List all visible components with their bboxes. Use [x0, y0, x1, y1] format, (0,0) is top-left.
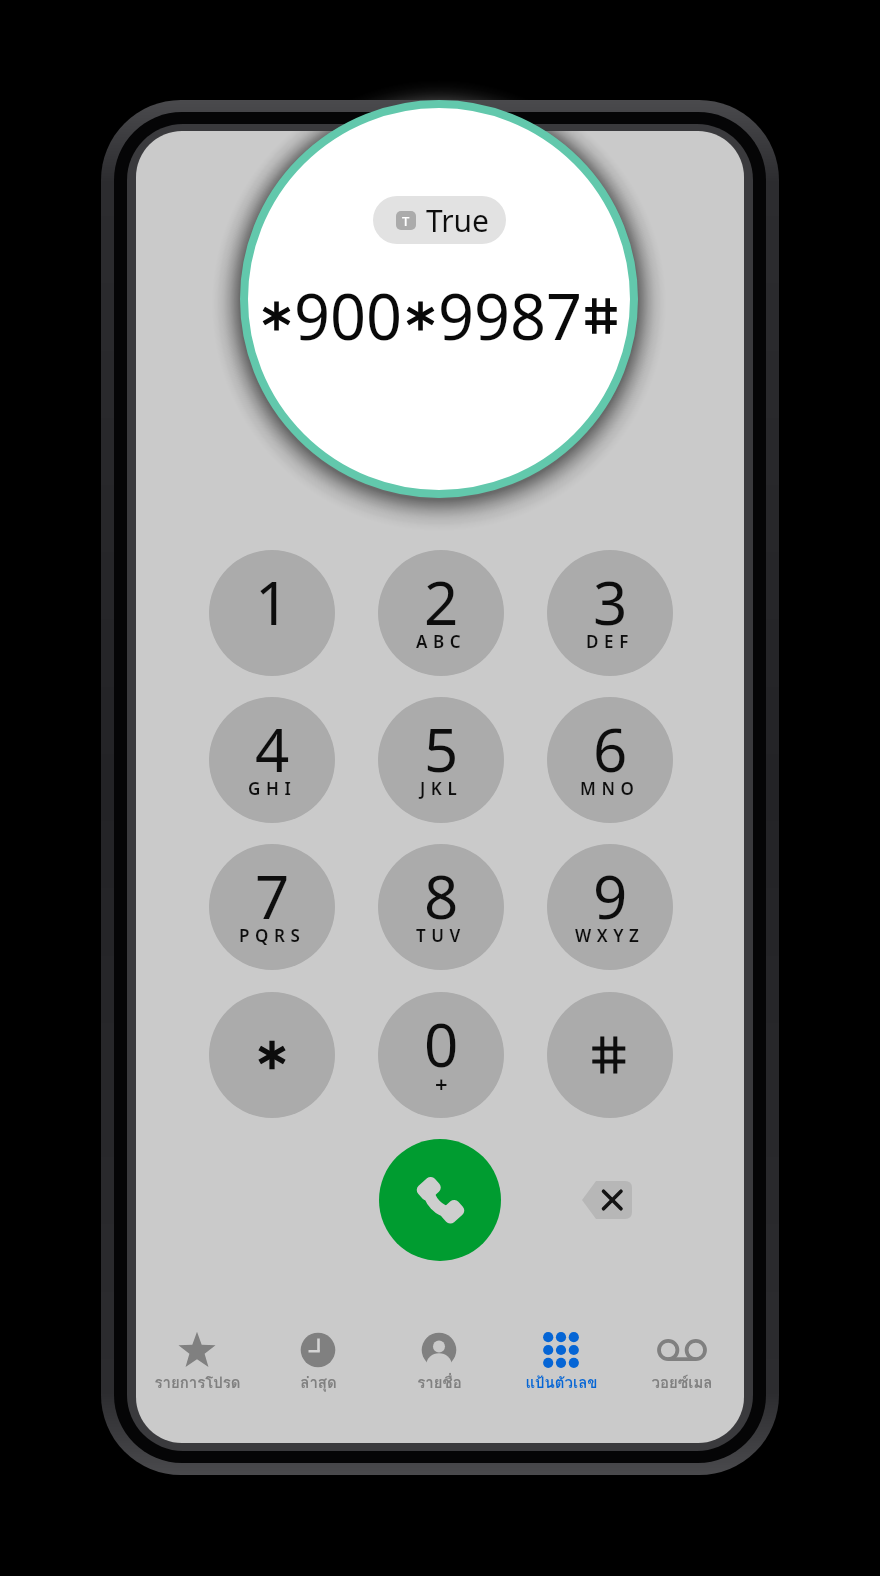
staticText: TUV — [416, 924, 466, 947]
staticText: วอยซ์เมล — [651, 1371, 713, 1395]
staticText: T — [402, 212, 410, 230]
button[interactable]: 9 — [547, 844, 673, 970]
staticText: 3 — [593, 561, 628, 643]
staticText: 5 — [424, 708, 459, 790]
button[interactable] — [209, 992, 335, 1118]
staticText: 2 — [424, 561, 459, 643]
button[interactable]: 4 — [209, 697, 335, 823]
staticText: 8 — [424, 855, 459, 937]
staticText: PQRS — [239, 924, 306, 947]
button[interactable]: 7 — [209, 844, 335, 970]
staticText: 0 — [424, 1003, 459, 1085]
button[interactable]: 3 — [547, 550, 673, 676]
button[interactable] — [547, 992, 673, 1118]
button[interactable]: 8 — [378, 844, 504, 970]
staticText: MNO — [580, 777, 640, 800]
button[interactable]: แป้นตัวเลข — [501, 1320, 621, 1404]
button[interactable]: Backspace — [582, 1181, 632, 1219]
button[interactable]: Call — [379, 1139, 501, 1261]
button[interactable]: 1 — [209, 550, 335, 676]
staticText: รายการโปรด — [154, 1371, 241, 1395]
staticText: + — [435, 1068, 448, 1098]
staticText: True — [426, 200, 490, 241]
button[interactable]: 6 — [547, 697, 673, 823]
staticText: แป้นตัวเลข — [525, 1371, 598, 1395]
staticText: WXYZ — [575, 924, 645, 947]
button[interactable]: วอยซ์เมล — [622, 1320, 742, 1404]
staticText: ล่าสุด — [300, 1371, 337, 1395]
button[interactable]: ล่าสุด — [258, 1320, 378, 1404]
staticText: 7 — [255, 855, 290, 937]
staticText: 900 — [294, 273, 403, 359]
staticText: GHI — [248, 777, 297, 800]
button[interactable]: 5 — [378, 697, 504, 823]
button[interactable]: 0 — [378, 992, 504, 1118]
staticText: DEF — [586, 630, 634, 653]
staticText: 9987 — [438, 273, 583, 359]
button[interactable]: รายการโปรด — [137, 1320, 257, 1404]
staticText: รายชื่อ — [417, 1371, 462, 1395]
staticText: 4 — [255, 708, 290, 790]
staticText: JKL — [420, 777, 463, 800]
button[interactable]: 2 — [378, 550, 504, 676]
staticText: ABC — [416, 630, 467, 653]
staticText: 1 — [255, 561, 290, 643]
staticText: 6 — [593, 708, 628, 790]
staticText: 9 — [593, 855, 628, 937]
button[interactable]: รายชื่อ — [379, 1320, 499, 1404]
